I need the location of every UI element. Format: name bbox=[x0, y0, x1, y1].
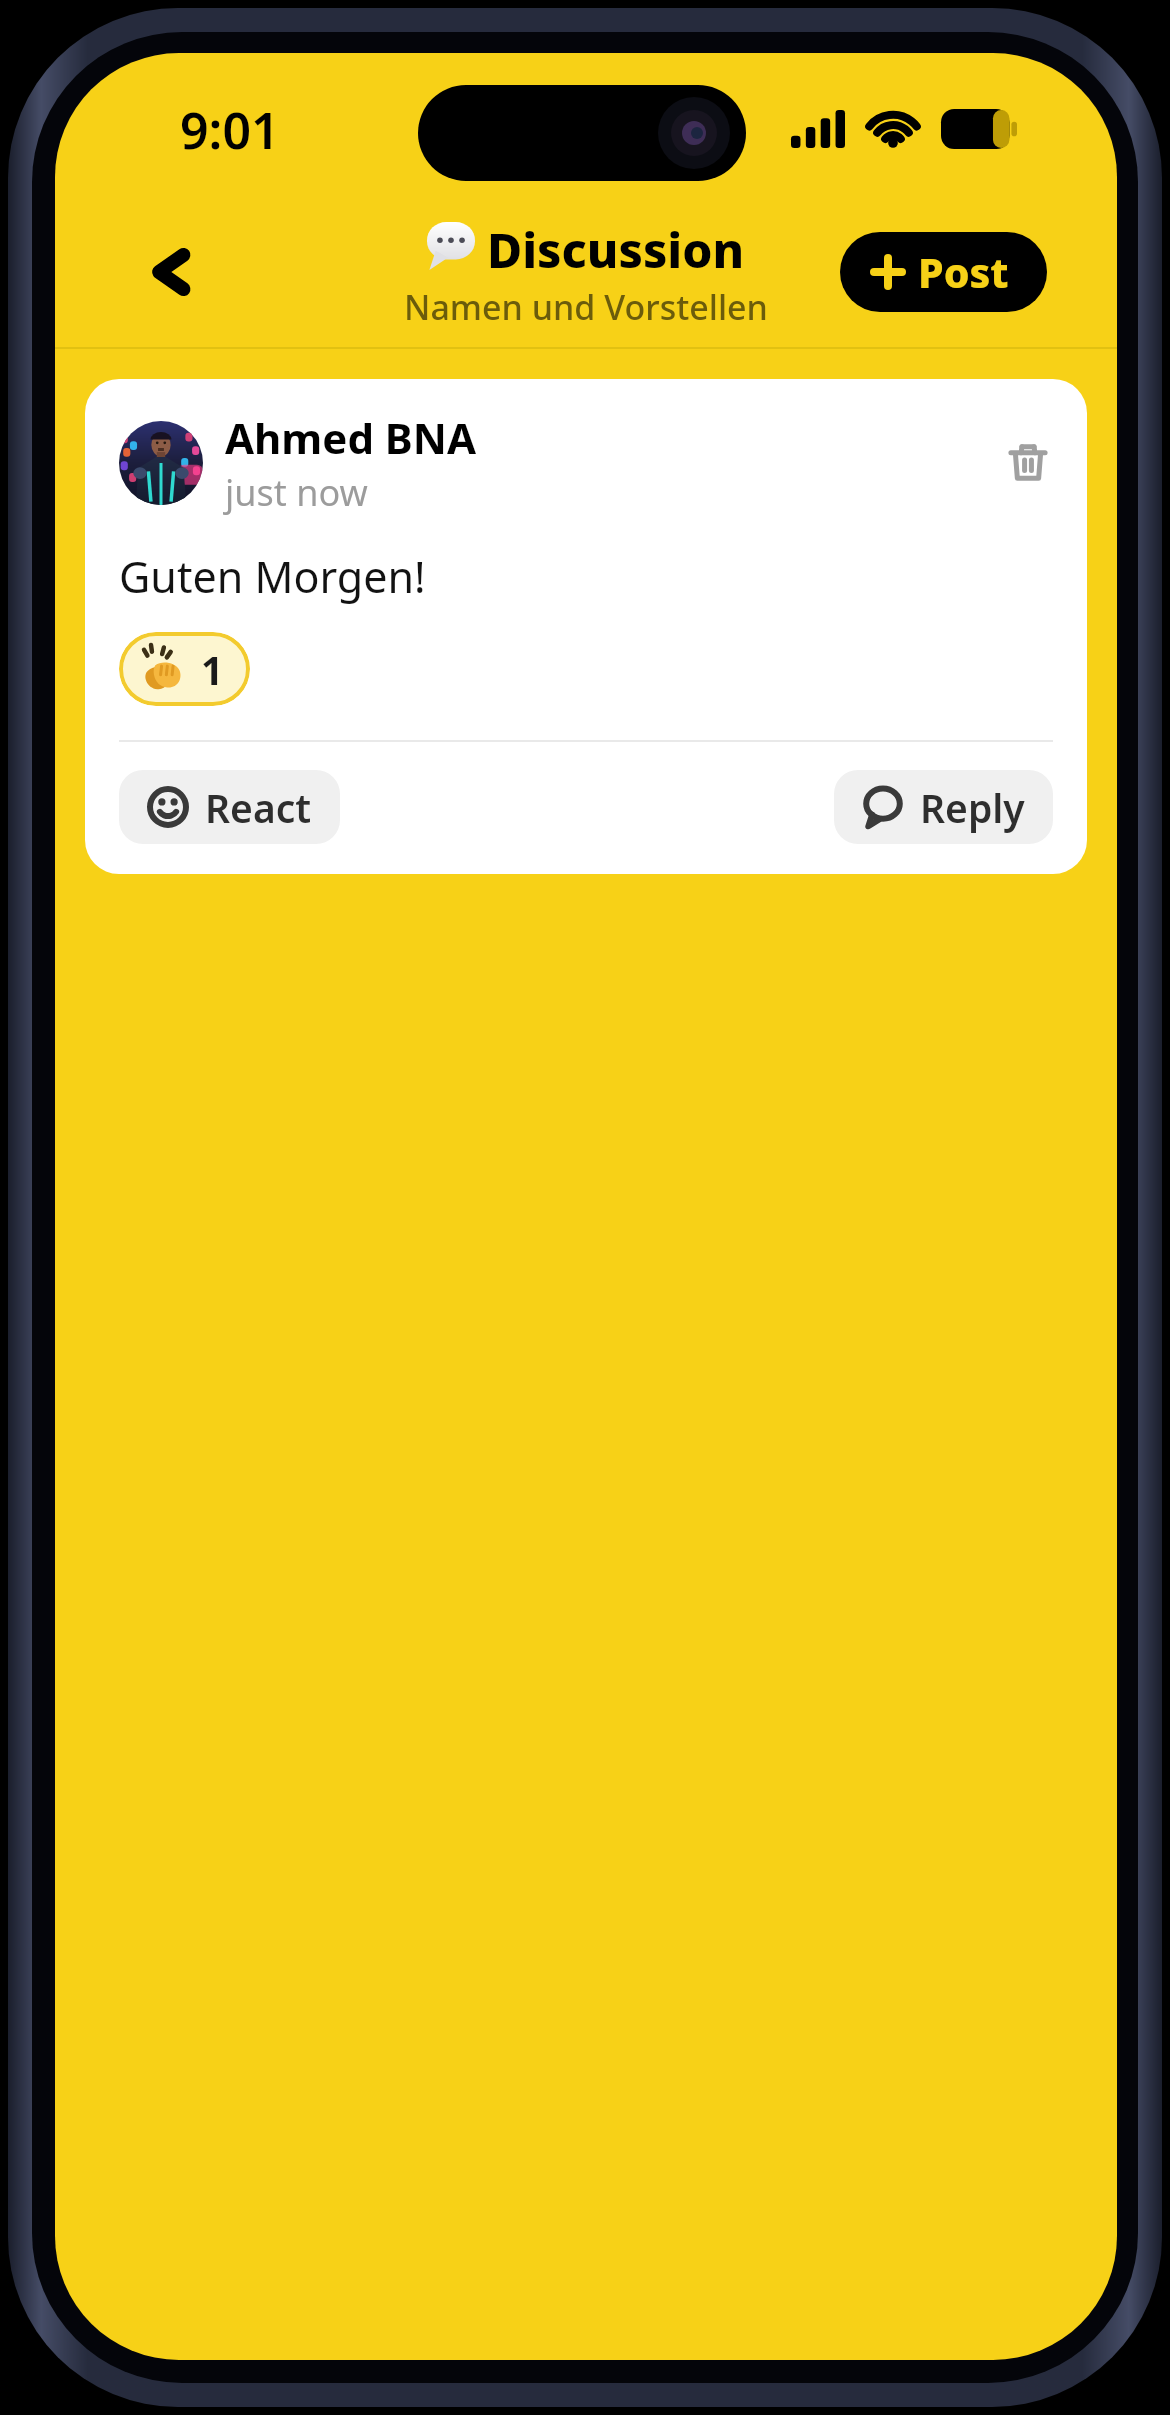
button[interactable]: Back bbox=[133, 233, 211, 311]
staticText: just now bbox=[225, 468, 368, 517]
staticText: Namen und Vorstellen bbox=[404, 284, 768, 330]
button[interactable]: Post bbox=[840, 232, 1047, 312]
staticText: Post bbox=[918, 244, 1009, 300]
staticText: React bbox=[205, 781, 312, 834]
button[interactable]: React bbox=[119, 770, 340, 844]
staticText: Discussion bbox=[487, 217, 745, 282]
button[interactable]: Reply bbox=[834, 770, 1053, 844]
button[interactable]: 1 bbox=[119, 632, 250, 706]
staticText: Ahmed BNA bbox=[225, 409, 476, 466]
staticText: 9:01 bbox=[180, 96, 280, 164]
staticText: 1 bbox=[201, 643, 224, 696]
staticText: Reply bbox=[920, 781, 1025, 834]
button[interactable]: Delete bbox=[997, 432, 1059, 494]
staticText: Guten Morgen! bbox=[119, 547, 426, 606]
